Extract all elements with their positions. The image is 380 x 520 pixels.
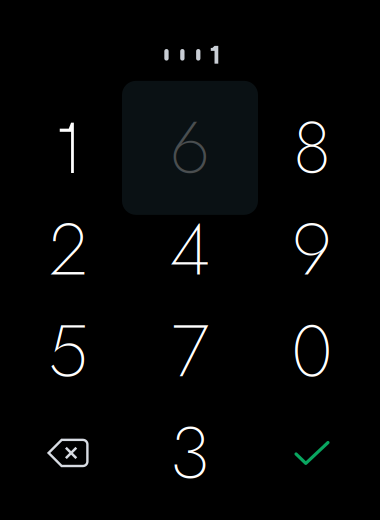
staticText: 4 — [169, 197, 210, 301]
button[interactable]: 3 — [129, 402, 251, 504]
button[interactable]: Delete — [7, 402, 129, 504]
button[interactable]: 0 — [251, 300, 373, 402]
staticText: 9 — [292, 197, 332, 301]
button[interactable]: Confirm — [251, 402, 373, 504]
button[interactable]: 9 — [251, 199, 373, 300]
staticText: 6 — [170, 96, 210, 200]
staticText: 7 — [171, 299, 208, 403]
button[interactable]: 5 — [7, 300, 129, 402]
staticText: 0 — [291, 299, 332, 403]
staticText: 5 — [48, 299, 88, 403]
staticText: 2 — [49, 197, 87, 301]
button[interactable]: 6 — [129, 97, 251, 199]
button[interactable]: 4 — [129, 199, 251, 300]
button[interactable] — [7, 97, 129, 199]
button[interactable]: 2 — [7, 199, 129, 300]
staticText: 3 — [170, 401, 210, 505]
button[interactable]: 8 — [251, 97, 373, 199]
button[interactable]: 7 — [129, 300, 251, 402]
staticText: 8 — [293, 96, 331, 200]
